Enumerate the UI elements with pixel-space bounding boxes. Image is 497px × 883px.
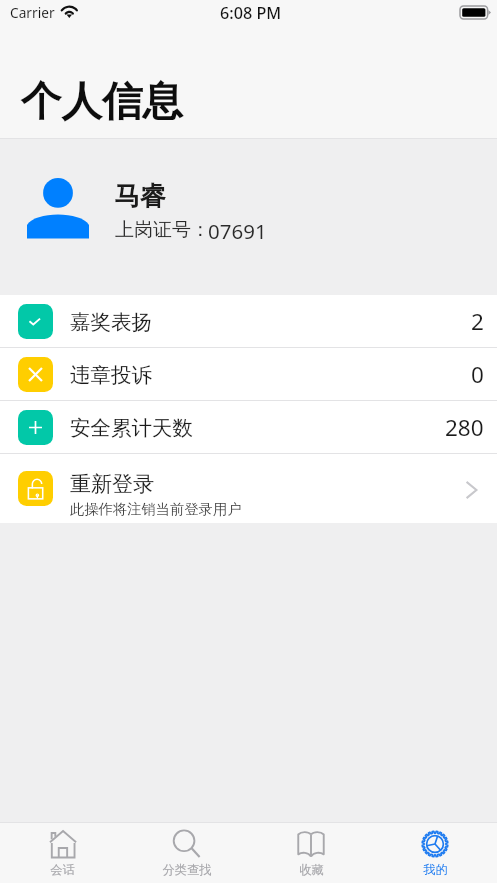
staticText: 会话 bbox=[50, 862, 75, 877]
button[interactable]: 会话 bbox=[0, 823, 125, 883]
staticText: 个人信息 bbox=[21, 76, 183, 127]
staticText: 分类查找 bbox=[162, 862, 212, 877]
staticText: 嘉奖表扬 bbox=[70, 309, 152, 335]
staticText: 安全累计天数 bbox=[70, 415, 193, 441]
staticText: 6:08 PM bbox=[220, 2, 282, 24]
button[interactable]: 分类查找 bbox=[125, 823, 249, 883]
button[interactable]: 安全累计天数 bbox=[0, 401, 497, 453]
button[interactable]: 我的 bbox=[373, 823, 497, 883]
button[interactable]: 嘉奖表扬 bbox=[0, 295, 497, 347]
staticText: 0 bbox=[471, 359, 484, 390]
staticText: 280 bbox=[445, 412, 484, 443]
staticText: 我的 bbox=[423, 862, 448, 877]
staticText: 马睿 bbox=[114, 180, 166, 213]
staticText: 2 bbox=[471, 306, 484, 337]
button[interactable]: 收藏 bbox=[249, 823, 373, 883]
staticText: 上岗证号： bbox=[115, 218, 210, 242]
staticText: 07691 bbox=[208, 217, 267, 245]
staticText: 违章投诉 bbox=[70, 362, 152, 388]
staticText: 重新登录 bbox=[70, 471, 154, 497]
staticText: Carrier bbox=[10, 3, 55, 22]
staticText: 收藏 bbox=[299, 862, 324, 877]
staticText: 此操作将注销当前登录用户 bbox=[70, 500, 242, 518]
button[interactable]: 重新登录 bbox=[0, 454, 497, 523]
button[interactable]: 违章投诉 bbox=[0, 348, 497, 400]
